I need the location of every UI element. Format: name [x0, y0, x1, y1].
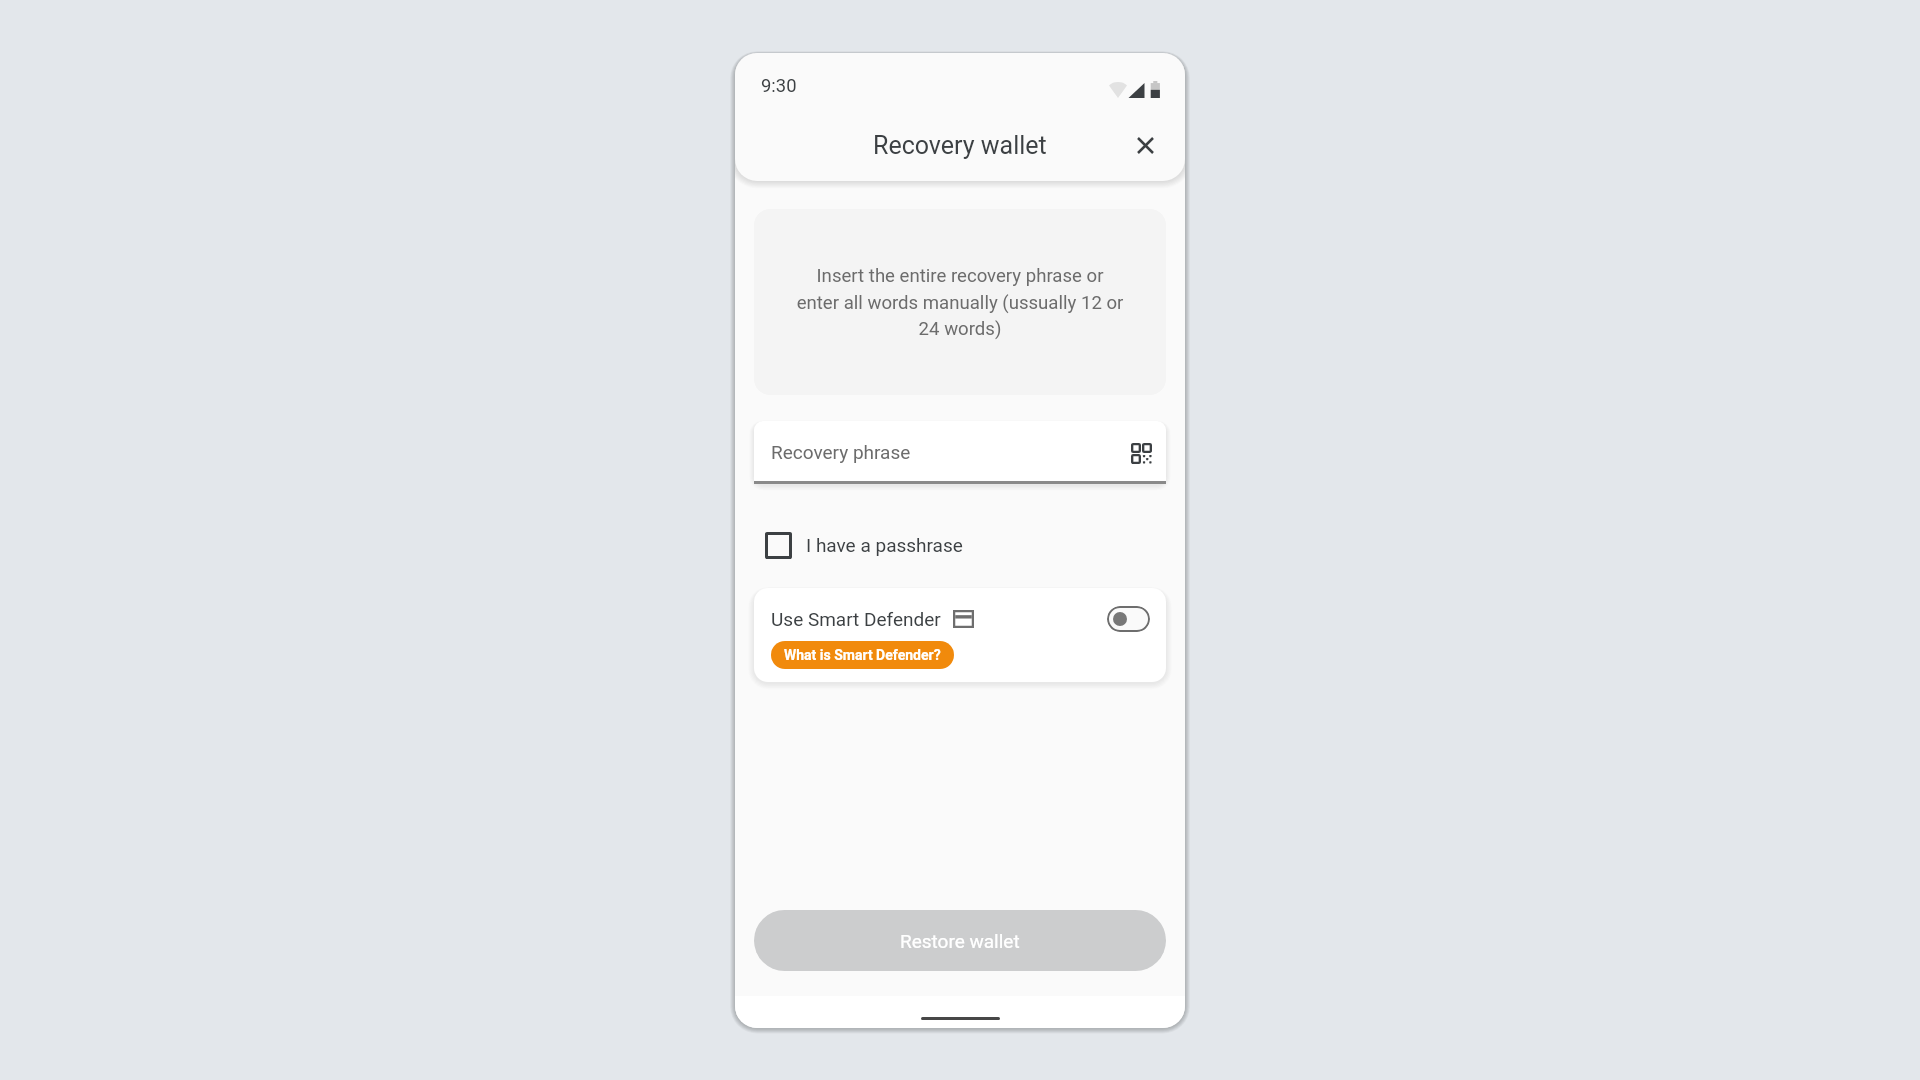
button[interactable]: Scan QR code	[1122, 434, 1160, 472]
staticText: Recovery wallet	[873, 131, 1047, 160]
button[interactable]: Restore wallet	[754, 910, 1166, 971]
staticText: 9:30	[761, 75, 797, 97]
staticText: Insert the entire recovery phrase or ent…	[796, 265, 1124, 340]
button[interactable]: Use Smart Defender toggle	[1107, 606, 1150, 632]
staticText: Restore wallet	[900, 930, 1020, 952]
staticText: Recovery phrase	[771, 441, 911, 463]
staticText: I have a passhrase	[806, 534, 963, 556]
button[interactable]: Recovery phrase	[754, 421, 1166, 484]
button[interactable]: Close	[1121, 121, 1169, 169]
button[interactable]: What is Smart Defender?	[771, 641, 954, 669]
staticText: Use Smart Defender	[771, 608, 941, 630]
button[interactable]: I have a passhrase	[765, 521, 979, 569]
staticText: What is Smart Defender?	[784, 647, 941, 663]
